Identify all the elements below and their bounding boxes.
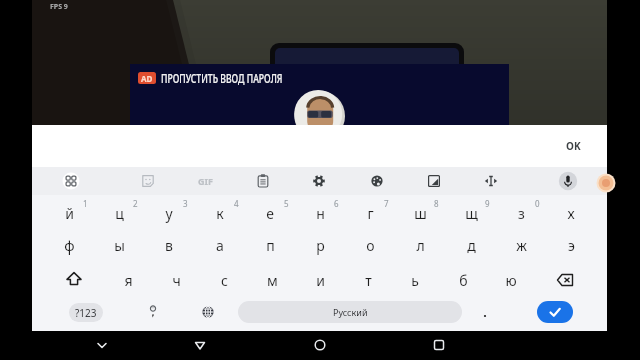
button[interactable]: ф [44,229,94,261]
button[interactable]: Floating keyboard [421,168,447,194]
staticText: д [467,236,476,255]
staticText: з [518,204,525,223]
button[interactable]: Clipboard [250,168,276,194]
staticText: а [216,236,224,255]
button[interactable]: Expand toolbar [58,168,84,194]
staticText: ю [505,271,517,290]
button[interactable]: Emoji and comma [128,296,178,328]
staticText: к [216,204,224,223]
staticText: б [459,271,468,290]
button[interactable]: д [446,229,496,261]
button[interactable]: ж [496,229,546,261]
staticText: й [65,204,74,223]
staticText: 5 [284,198,289,209]
staticText: о [366,236,375,255]
staticText: ж [516,236,527,255]
staticText: 3 [183,198,188,209]
button[interactable]: м [247,264,297,296]
button[interactable]: Hide keyboard [88,331,116,359]
staticText: ш [414,204,427,223]
staticText: 9 [485,198,490,209]
button[interactable]: Shift [49,264,99,296]
staticText: у [165,204,173,223]
button[interactable]: OK [558,135,589,157]
button[interactable]: ?123 [65,299,107,325]
button[interactable]: х [546,197,596,229]
button[interactable]: щ [446,197,496,229]
button[interactable]: ч [151,264,201,296]
button[interactable]: ш [395,197,445,229]
staticText: GIF [198,175,213,187]
staticText: л [416,236,425,255]
staticText: OK [566,139,581,153]
button[interactable]: е [245,197,295,229]
staticText: щ [465,204,478,223]
staticText: с [221,271,228,290]
button[interactable]: Backspace [540,264,590,296]
staticText: ?123 [75,306,97,320]
staticText: в [165,236,173,255]
button[interactable]: а [195,229,245,261]
button[interactable]: и [295,264,345,296]
staticText: 0 [535,198,540,209]
staticText: г [367,204,374,223]
button[interactable]: ы [94,229,144,261]
button[interactable]: Change language [183,296,233,328]
staticText: ц [115,204,124,223]
staticText: FPS 9 [50,2,68,12]
button[interactable]: GIF [192,168,218,194]
button[interactable]: Settings [306,168,332,194]
button[interactable]: у [144,197,194,229]
staticText: 4 [234,198,239,209]
button[interactable]: Period [460,296,510,328]
button[interactable]: л [395,229,445,261]
staticText: ы [114,236,125,255]
staticText: 8 [434,198,439,209]
staticText: 6 [334,198,339,209]
button[interactable]: т [343,264,393,296]
button[interactable]: й [44,197,94,229]
button[interactable]: э [546,229,596,261]
staticText: н [316,204,325,223]
staticText: Русский [333,306,368,318]
button[interactable]: ц [94,197,144,229]
button[interactable]: Themes [364,168,390,194]
button[interactable]: б [438,264,488,296]
button[interactable]: Stickers [135,168,161,194]
button[interactable]: я [103,264,153,296]
staticText: р [316,236,325,255]
staticText: 7 [384,198,389,209]
button[interactable]: Recents [425,331,453,359]
staticText: ПРОПУСТИТЬ ВВОД ПАРОЛЯ [161,69,283,87]
button[interactable]: AD [138,69,344,87]
staticText: AD [141,73,153,84]
button[interactable]: ь [390,264,440,296]
staticText: 1 [83,198,88,209]
button[interactable]: н [295,197,345,229]
staticText: п [266,236,275,255]
staticText: х [567,204,575,223]
button[interactable]: в [144,229,194,261]
button[interactable]: Home [306,331,334,359]
button[interactable]: Voice input [555,168,581,194]
staticText: т [365,271,372,290]
staticText: е [266,204,274,223]
button[interactable]: о [345,229,395,261]
staticText: э [568,236,575,255]
staticText: ь [411,271,419,290]
button[interactable]: з [496,197,546,229]
button[interactable]: Русский [238,301,462,323]
button[interactable]: с [199,264,249,296]
button[interactable]: Enter [537,301,573,323]
button[interactable]: г [345,197,395,229]
button[interactable]: р [295,229,345,261]
staticText: 2 [133,198,138,209]
staticText: м [267,271,278,290]
staticText: и [316,271,325,290]
staticText: ф [64,236,75,255]
button[interactable]: п [245,229,295,261]
button[interactable]: Text editing [478,168,504,194]
button[interactable]: ю [486,264,536,296]
button[interactable]: Back [186,331,214,359]
button[interactable]: к [195,197,245,229]
